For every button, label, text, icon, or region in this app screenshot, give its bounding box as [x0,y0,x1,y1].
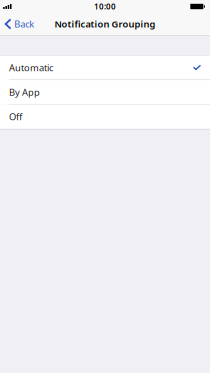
staticText: Off [9,111,22,123]
button[interactable]: By App [0,80,210,105]
staticText: Back [14,18,34,30]
button[interactable]: Off [0,105,210,129]
button[interactable]: Automatic [0,56,210,80]
staticText: By App [9,86,40,98]
staticText: 10:00 [94,1,116,12]
button[interactable]: Back [0,13,39,35]
staticText: Automatic [9,61,53,74]
staticText: Notification Grouping [54,18,155,30]
